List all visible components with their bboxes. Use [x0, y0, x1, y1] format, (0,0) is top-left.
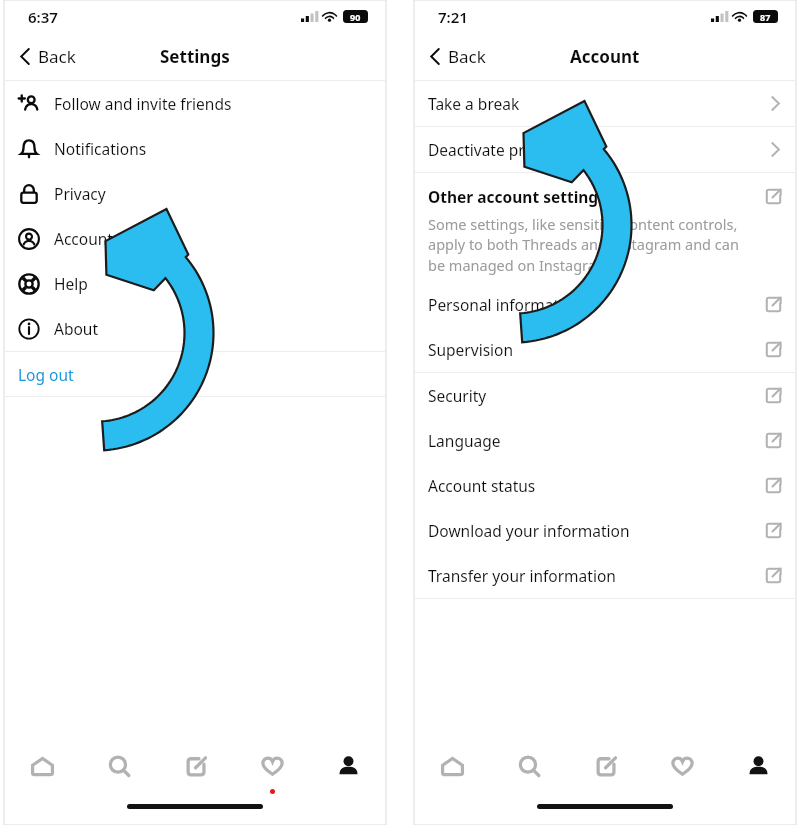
- staticText: About: [54, 318, 98, 339]
- button[interactable]: About: [4, 306, 386, 351]
- staticText: 90: [350, 11, 361, 23]
- staticText: Log out: [18, 364, 74, 385]
- button[interactable]: Activity: [234, 737, 310, 795]
- staticText: Back: [38, 45, 76, 68]
- button[interactable]: Take a break: [414, 81, 796, 126]
- button[interactable]: Personal information: [414, 282, 796, 327]
- staticText: Settings: [160, 45, 230, 68]
- staticText: 7:21: [438, 7, 468, 27]
- button[interactable]: Deactivate profile: [414, 127, 796, 172]
- button[interactable]: Follow and invite friends: [4, 81, 386, 126]
- button[interactable]: Back: [16, 37, 80, 76]
- button[interactable]: Profile: [310, 737, 386, 795]
- button[interactable]: Transfer your information: [414, 553, 796, 598]
- staticText: Transfer your information: [428, 565, 765, 586]
- staticText: Follow and invite friends: [54, 93, 232, 114]
- button[interactable]: Other account settings: [414, 173, 796, 282]
- staticText: Account: [570, 45, 640, 68]
- button[interactable]: Help: [4, 261, 386, 306]
- staticText: Account status: [428, 475, 765, 496]
- staticText: Notifications: [54, 138, 147, 159]
- staticText: Supervision: [428, 339, 765, 360]
- staticText: Language: [428, 430, 765, 451]
- button[interactable]: Search: [491, 737, 568, 795]
- button[interactable]: Privacy: [4, 171, 386, 216]
- staticText: Other account settings: [428, 186, 606, 207]
- staticText: Security: [428, 385, 765, 406]
- button[interactable]: Language: [414, 418, 796, 463]
- button[interactable]: Account: [4, 216, 386, 261]
- staticText: 6:37: [28, 7, 58, 27]
- button[interactable]: Home: [4, 737, 81, 795]
- staticText: Privacy: [54, 183, 106, 204]
- staticText: Deactivate profile: [428, 139, 771, 160]
- button[interactable]: Create thread: [158, 737, 234, 795]
- staticText: Account: [54, 228, 113, 249]
- staticText: Help: [54, 273, 88, 294]
- button[interactable]: Home: [414, 737, 491, 795]
- button[interactable]: Log out: [4, 352, 386, 396]
- button[interactable]: Notifications: [4, 126, 386, 171]
- button[interactable]: Profile: [720, 737, 796, 795]
- button[interactable]: Search: [81, 737, 158, 795]
- button[interactable]: Account status: [414, 463, 796, 508]
- button[interactable]: Back: [426, 37, 490, 76]
- button[interactable]: Activity: [644, 737, 720, 795]
- button[interactable]: Create thread: [568, 737, 644, 795]
- staticText: Back: [448, 45, 486, 68]
- staticText: 87: [760, 11, 771, 23]
- staticText: Take a break: [428, 93, 771, 114]
- button[interactable]: Download your information: [414, 508, 796, 553]
- staticText: Some settings, like sensitive content co…: [428, 214, 757, 276]
- staticText: Download your information: [428, 520, 765, 541]
- button[interactable]: Supervision: [414, 327, 796, 372]
- staticText: Personal information: [428, 294, 765, 315]
- button[interactable]: Security: [414, 373, 796, 418]
